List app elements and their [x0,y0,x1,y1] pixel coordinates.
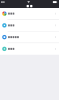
button[interactable] [0,20,59,31]
button[interactable] [0,43,59,54]
button[interactable] [0,31,59,43]
button[interactable] [0,8,59,19]
